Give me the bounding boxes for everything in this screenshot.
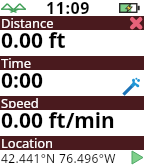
staticText: 0.00 ft/min (1, 106, 115, 135)
staticText: 0.00 ft (1, 26, 66, 55)
staticText: Time (1, 54, 32, 68)
staticText: Speed (1, 94, 39, 108)
button[interactable]: Speed (0, 96, 144, 110)
button[interactable]: Distance (0, 16, 144, 30)
staticText: 0:00 (1, 66, 43, 95)
button[interactable]: Location (0, 136, 144, 150)
button[interactable]: Time (0, 56, 144, 70)
other: Battery charging (119, 3, 140, 13)
staticText: 11:09 (46, 0, 91, 19)
staticText: 42.441°N 76.496°W (1, 150, 116, 166)
button[interactable]: Start (131, 150, 144, 165)
button[interactable]: Clear (128, 15, 144, 31)
other: GPS signal (1, 3, 26, 13)
button[interactable]: Auto (122, 78, 140, 96)
staticText: Distance (1, 14, 54, 28)
staticText: Location (1, 134, 54, 148)
